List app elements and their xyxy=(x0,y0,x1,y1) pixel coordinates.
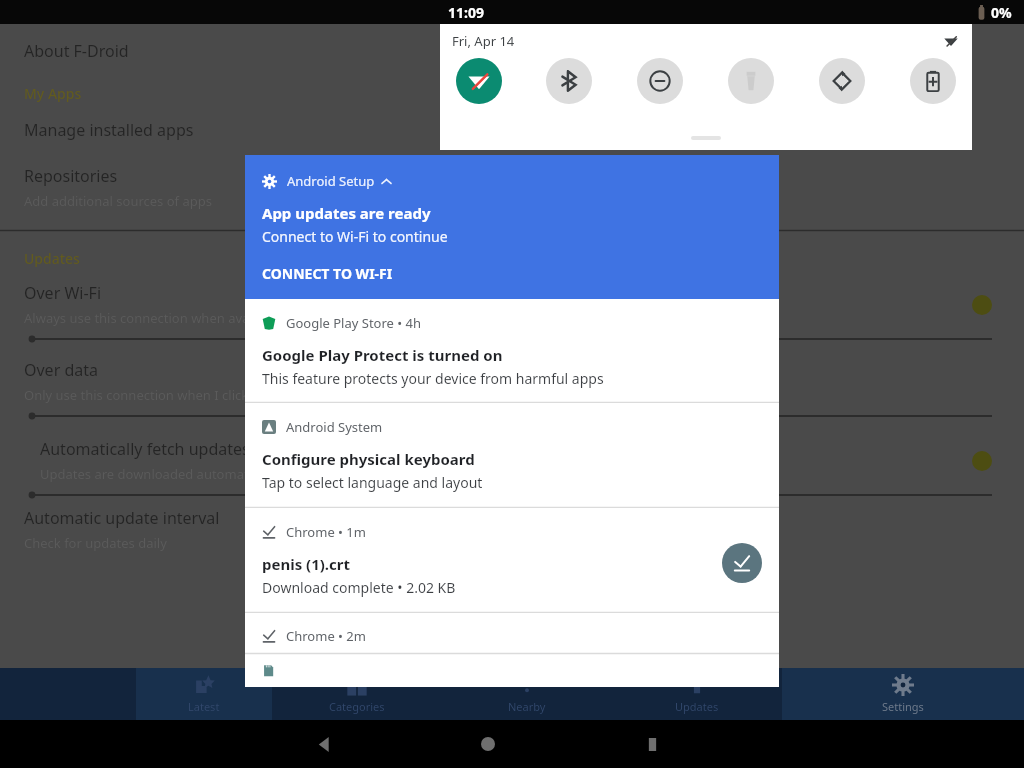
staticText: Categories xyxy=(329,699,385,714)
staticText: Chrome • 1m xyxy=(286,523,366,541)
staticText: Nearby xyxy=(508,699,546,714)
button[interactable]: CONNECT TO WI-FI xyxy=(262,264,393,283)
staticText: 0% xyxy=(991,3,1012,22)
button[interactable]: Auto-rotate xyxy=(819,58,865,104)
staticText: penis (1).crt xyxy=(262,554,351,574)
button[interactable]: Categories xyxy=(272,668,442,720)
button[interactable]: Wi-Fi xyxy=(456,58,502,104)
button[interactable]: Expand xyxy=(691,136,721,140)
staticText: Fri, Apr 14 xyxy=(452,32,515,50)
staticText: Automatically fetch updates xyxy=(40,438,250,460)
button[interactable]: Google Play Store • 4h xyxy=(245,299,779,402)
button[interactable]: Flashlight xyxy=(728,58,774,104)
button[interactable]: Automatically fetch updates xyxy=(0,438,1024,483)
staticText: Add additional sources of apps xyxy=(24,192,212,210)
staticText: Manage installed apps xyxy=(24,119,194,141)
button[interactable]: Latest xyxy=(136,668,272,720)
button[interactable]: About F-Droid xyxy=(0,38,1024,64)
staticText: Always use this connection when availabl… xyxy=(24,309,283,327)
button[interactable]: Updates xyxy=(612,668,782,720)
button[interactable]: Over Wi-Fi xyxy=(0,282,1024,327)
button[interactable]: Android Setup xyxy=(245,155,779,299)
button[interactable]: Battery saver xyxy=(910,58,956,104)
staticText: Updates xyxy=(675,699,719,714)
button[interactable]: Over data xyxy=(0,359,1024,404)
staticText: Configure physical keyboard xyxy=(262,449,475,469)
staticText: Google Play Store • 4h xyxy=(286,314,422,332)
staticText: Google Play Protect is turned on xyxy=(262,345,503,365)
staticText: Android Setup xyxy=(287,172,375,190)
button[interactable]: Settings xyxy=(782,668,1024,720)
staticText: Automatic update interval xyxy=(24,507,220,529)
staticText: Updates xyxy=(24,249,80,268)
button[interactable]: Automatic update interval xyxy=(0,505,1024,554)
staticText: Updates are downloaded automatically xyxy=(40,465,279,483)
staticText: Over Wi-Fi xyxy=(24,282,102,304)
button[interactable]: Nearby xyxy=(442,668,612,720)
staticText: Check for updates daily xyxy=(24,534,167,552)
staticText: Only use this connection when I click do… xyxy=(24,386,312,404)
staticText: Android System xyxy=(286,418,383,436)
staticText: Repositories xyxy=(24,165,118,187)
button[interactable]: Toggle Over Wi-Fi xyxy=(960,283,1004,327)
button[interactable]: Bluetooth xyxy=(546,58,592,104)
staticText: CONNECT TO WI-FI xyxy=(262,264,393,283)
button[interactable]: Repositories xyxy=(0,163,1024,212)
button[interactable]: Home xyxy=(464,720,512,768)
staticText: App updates are ready xyxy=(262,203,431,223)
button[interactable]: Chrome • 2m xyxy=(245,613,779,687)
staticText: This feature protects your device from h… xyxy=(262,369,604,388)
staticText: Connect to Wi-Fi to continue xyxy=(262,227,448,246)
button[interactable]: Do not disturb xyxy=(637,58,683,104)
button[interactable]: Android System xyxy=(245,403,779,507)
staticText: About F-Droid xyxy=(24,40,129,62)
button[interactable]: Wi-Fi off xyxy=(942,32,960,50)
staticText: Latest xyxy=(188,699,220,714)
button[interactable]: Toggle Automatically fetch updates xyxy=(960,439,1004,483)
staticText: 11:09 xyxy=(448,3,484,22)
staticText: Settings xyxy=(882,699,924,714)
staticText: Download complete • 2.02 KB xyxy=(262,578,456,597)
button[interactable]: Manage installed apps xyxy=(0,117,1024,143)
button[interactable]: Open download xyxy=(722,543,762,583)
staticText: Over data xyxy=(24,359,98,381)
button[interactable]: Recents xyxy=(628,720,676,768)
staticText: Chrome • 2m xyxy=(286,627,366,645)
button[interactable]: Back xyxy=(300,720,348,768)
button[interactable]: Chrome • 1m xyxy=(245,508,779,612)
staticText: My Apps xyxy=(24,84,82,103)
staticText: Tap to select language and layout xyxy=(262,473,483,492)
